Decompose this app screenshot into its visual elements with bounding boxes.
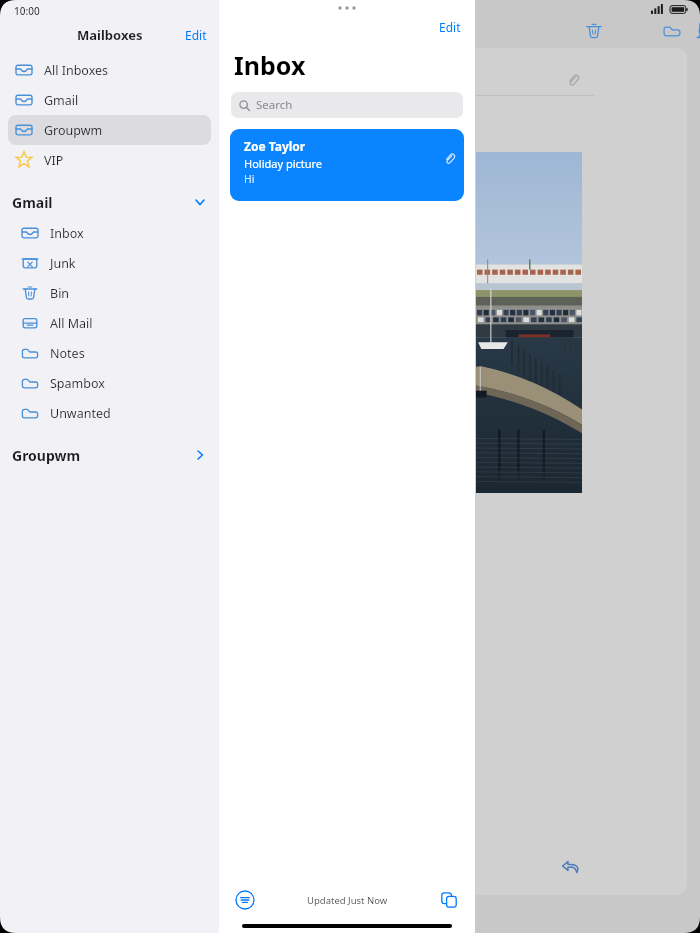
button[interactable]: Junk xyxy=(8,248,211,278)
button[interactable]: Compose xyxy=(439,890,459,910)
button[interactable]: Spambox xyxy=(8,368,211,398)
staticText: Holiday picture xyxy=(244,156,323,171)
button[interactable]: Bin xyxy=(8,278,211,308)
staticText: Groupwm xyxy=(12,446,81,465)
staticText: Groupwm xyxy=(44,122,103,139)
staticText: 10:00 xyxy=(14,4,40,18)
staticText: Gmail xyxy=(12,193,53,212)
button[interactable]: Delete xyxy=(583,20,605,42)
button[interactable]: Filter xyxy=(235,890,255,910)
button[interactable]: Edit xyxy=(425,16,475,38)
button[interactable]: Groupwm xyxy=(0,442,219,468)
button[interactable]: Unwanted xyxy=(8,398,211,428)
staticText: Junk xyxy=(50,255,76,272)
button[interactable]: Inbox xyxy=(8,218,211,248)
staticText: Unwanted xyxy=(50,405,111,422)
button[interactable]: Edit xyxy=(173,23,219,47)
button[interactable]: Search xyxy=(231,92,463,118)
staticText: Updated Just Now xyxy=(307,894,388,907)
staticText: Mailboxes xyxy=(77,26,143,44)
button[interactable]: All Inboxes xyxy=(8,55,211,85)
button[interactable]: Groupwm xyxy=(8,115,211,145)
staticText: VIP xyxy=(44,152,64,169)
staticText: Inbox xyxy=(234,48,306,82)
staticText: Zoe Taylor xyxy=(244,138,306,154)
staticText: Hi xyxy=(244,172,255,186)
staticText: Edit xyxy=(185,27,207,43)
staticText: All Mail xyxy=(50,315,93,332)
staticText: Bin xyxy=(50,285,70,302)
button[interactable]: Gmail xyxy=(8,85,211,115)
button[interactable]: VIP xyxy=(8,145,211,175)
button[interactable]: Notes xyxy=(8,338,211,368)
staticText: Spambox xyxy=(50,375,105,392)
button[interactable]: All Mail xyxy=(8,308,211,338)
button[interactable]: Move to folder xyxy=(661,20,683,42)
staticText: Search xyxy=(256,97,293,113)
staticText: Edit xyxy=(439,19,461,35)
staticText: Gmail xyxy=(44,92,79,109)
button[interactable]: Gmail xyxy=(0,189,219,215)
staticText: All Inboxes xyxy=(44,62,109,79)
staticText: Inbox xyxy=(50,225,84,242)
button[interactable]: Reply xyxy=(560,855,582,877)
staticText: Notes xyxy=(50,345,85,362)
button[interactable]: Zoe Taylor xyxy=(230,129,464,201)
